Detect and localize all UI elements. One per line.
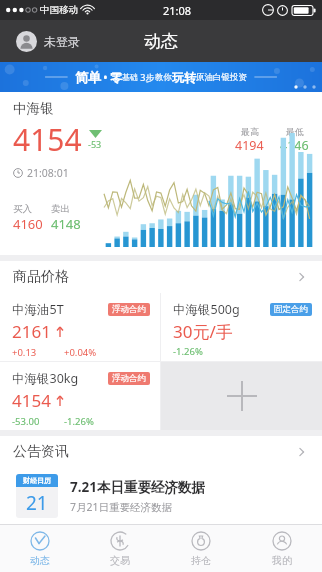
staticText: 21 — [26, 490, 48, 516]
staticText: 浮动合约 — [112, 373, 146, 384]
staticText: 浮动合约 — [112, 304, 146, 315]
staticText: 4160 — [13, 215, 43, 233]
staticText: 固定合约 — [274, 304, 308, 315]
staticText: 我的 — [272, 554, 292, 567]
button[interactable]: 交易 — [80, 525, 160, 572]
staticText: 未登录 — [44, 34, 80, 49]
staticText: 中海银 — [13, 100, 54, 117]
other: More — [295, 445, 309, 459]
staticText: 零 — [110, 70, 122, 85]
button[interactable]: 动态 — [0, 525, 80, 572]
staticText: 持仓 — [191, 554, 211, 567]
button[interactable]: 商品价格 — [0, 261, 322, 293]
staticText: -53.00 — [12, 415, 64, 428]
staticText: 中海银500g — [173, 301, 240, 318]
button[interactable]: 中海银500g — [161, 293, 322, 361]
staticText: 4148 — [51, 215, 81, 233]
staticText: 21:08 — [163, 3, 192, 18]
button[interactable]: 财经日历 — [0, 468, 322, 524]
staticText: 4154 — [13, 119, 82, 160]
staticText: 30元/手 — [173, 320, 233, 343]
staticText: 4194 — [235, 137, 264, 154]
other: More — [295, 270, 309, 284]
staticText: 基础 — [122, 72, 138, 82]
staticText: 21:08:01 — [27, 166, 69, 180]
staticText: 中国移动 — [40, 4, 78, 16]
staticText: -53 — [88, 138, 102, 150]
button[interactable]: 未登录 — [12, 27, 84, 56]
staticText: 商品价格 — [13, 268, 69, 286]
staticText: 动态 — [30, 554, 50, 567]
staticText: 2161 — [12, 320, 51, 343]
staticText: 最高 — [241, 126, 259, 137]
staticText: 3步 — [138, 71, 155, 83]
staticText: -1.26% — [173, 345, 203, 358]
button[interactable]: 简单 — [0, 62, 322, 92]
staticText: 教你 — [155, 72, 172, 83]
staticText: 7.21本日重要经济数据 — [70, 478, 205, 496]
staticText: 原油白银投资 — [196, 72, 247, 83]
staticText: 财经日历 — [23, 476, 51, 485]
button[interactable]: 公告资讯 — [0, 436, 322, 468]
staticText: +0.13 — [12, 346, 64, 359]
staticText: 中海油5T — [12, 301, 64, 318]
staticText: 简单 — [75, 69, 101, 85]
staticText: 卖出 — [51, 203, 70, 215]
staticText: 公告资讯 — [13, 443, 69, 461]
staticText: -1.26% — [64, 415, 94, 428]
staticText: 买入 — [13, 203, 43, 215]
button[interactable]: Add — [161, 362, 322, 430]
staticText: 最低 — [286, 126, 304, 137]
staticText: 7月21日重要经济数据 — [70, 500, 173, 514]
staticText: • — [101, 70, 110, 84]
button[interactable]: 中海油5T — [0, 293, 160, 361]
staticText: 交易 — [110, 554, 130, 567]
button[interactable]: 我的 — [241, 525, 322, 572]
staticText: 玩转 — [172, 70, 196, 85]
staticText: 4154 — [12, 389, 51, 412]
staticText: +0.04% — [64, 346, 97, 359]
button[interactable]: 中海银30kg — [0, 362, 160, 430]
button[interactable]: 持仓 — [160, 525, 241, 572]
staticText: 中海银30kg — [12, 370, 79, 387]
staticText: 动态 — [144, 31, 178, 52]
staticText: 4146 — [280, 137, 309, 154]
